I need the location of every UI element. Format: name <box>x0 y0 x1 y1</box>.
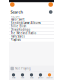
button[interactable]: New <box>18 72 27 80</box>
staticText: Harry Styles <box>10 35 24 38</box>
button[interactable]: Radio <box>27 72 36 80</box>
staticText: RECENT <box>10 15 19 18</box>
button[interactable]: Home <box>9 72 18 80</box>
staticText: The Weeknd Radio <box>10 31 36 35</box>
staticText: Olivia Rodrigo <box>10 28 30 31</box>
staticText: Home <box>11 77 15 79</box>
staticText: Playlists <box>10 38 20 42</box>
button[interactable]: Kendrick Lamar Albums <box>9 21 54 25</box>
staticText: Kendrick Lamar Albums <box>10 21 40 25</box>
button[interactable]: Taylor Swift <box>9 18 54 21</box>
button[interactable]: Search <box>45 72 54 80</box>
button[interactable]: Billie Eilish <box>9 25 54 28</box>
staticText: New <box>21 77 24 79</box>
button[interactable]: Not Playing <box>9 65 54 71</box>
staticText: Library <box>37 77 43 79</box>
button[interactable]: Library <box>36 72 45 80</box>
staticText: Not Playing <box>15 67 31 70</box>
button[interactable]: The Weeknd Radio <box>9 32 54 35</box>
button[interactable]: Harry Styles <box>9 35 54 38</box>
staticText: Search <box>46 77 52 79</box>
button[interactable]: Playlists <box>9 38 54 42</box>
button[interactable]: Olivia Rodrigo <box>9 28 54 32</box>
staticText: Billie Eilish <box>10 24 26 28</box>
staticText: Search <box>10 9 23 15</box>
staticText: Taylor Swift <box>10 18 24 21</box>
staticText: Radio <box>29 77 33 79</box>
